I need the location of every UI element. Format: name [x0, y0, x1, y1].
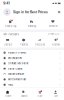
staticText: Help [8, 83, 14, 86]
staticText: Packing [19, 43, 28, 46]
button[interactable]: Online Service [0, 71, 64, 77]
staticText: Shopping [5, 25, 17, 28]
button[interactable]: Sign in for Best Prices [3, 8, 56, 16]
button[interactable]: Unpaid [0, 38, 16, 46]
button[interactable]: Cart [32, 90, 48, 98]
button[interactable]: Shopping [0, 19, 21, 28]
staticText: Search [21, 95, 27, 98]
staticText: Seller Center [8, 67, 23, 70]
staticText: Review [52, 43, 60, 46]
button[interactable]: Help [0, 82, 64, 87]
button[interactable]: Settings [56, 11, 61, 14]
staticText: Tracking [27, 25, 36, 28]
button[interactable]: Recently Viewed [0, 50, 64, 55]
staticText: Unpaid [3, 43, 12, 46]
staticText: Wishlist [49, 25, 58, 28]
button[interactable]: Tracking [21, 19, 43, 28]
button[interactable]: Worry-Free Plan [0, 77, 64, 82]
button[interactable]: Home [0, 90, 16, 98]
staticText: Online Service [8, 72, 24, 76]
button[interactable]: View All [48, 33, 61, 36]
staticText: 9:41 [3, 1, 9, 5]
button[interactable]: Wishlist [43, 19, 64, 28]
staticText: MY ORDERS [3, 33, 19, 36]
staticText: Contact My Seller [8, 62, 29, 65]
button[interactable]: Review [48, 38, 64, 46]
staticText: Worry-Free Plan [8, 78, 26, 81]
staticText: My Inquiries [8, 56, 22, 60]
button[interactable]: My Inquiries [0, 55, 64, 61]
button[interactable]: Packing [16, 38, 32, 46]
staticText: Me [54, 95, 57, 98]
staticText: Shipped [34, 43, 45, 46]
button[interactable]: Contact My Seller [0, 61, 64, 66]
staticText: View All [48, 33, 59, 36]
staticText: Home [5, 95, 11, 98]
button[interactable]: Seller Center [0, 66, 64, 71]
button[interactable]: Shipped [32, 38, 48, 46]
staticText: Recently Viewed [8, 51, 27, 54]
staticText: Sign in for Best Prices [13, 10, 48, 14]
staticText: Cart [37, 95, 42, 98]
button[interactable]: Search [16, 90, 32, 98]
button[interactable]: Me [48, 90, 64, 98]
